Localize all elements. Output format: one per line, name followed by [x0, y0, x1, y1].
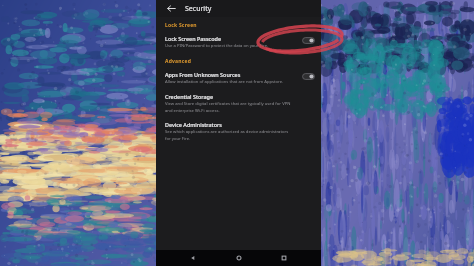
- staticText: Apps From Unknown Sources: [165, 71, 241, 78]
- button[interactable]: Credential Storage: [156, 89, 321, 117]
- staticText: Lock Screen: [165, 22, 197, 29]
- button[interactable]: Back: [165, 2, 178, 15]
- staticText: Security: [185, 4, 212, 14]
- staticText: See which applications are authorized as…: [165, 129, 293, 141]
- button[interactable]: Toggle: [302, 37, 315, 44]
- staticText: Use a PIN/Password to protect the data o…: [165, 43, 269, 49]
- button[interactable]: Apps From Unknown Sources: [156, 67, 321, 89]
- staticText: View and Store digital certificates that…: [165, 101, 293, 113]
- staticText: Lock Screen Passcode: [165, 35, 221, 42]
- staticText: Allow installation of applications that …: [165, 79, 284, 85]
- button[interactable]: Toggle: [302, 73, 315, 80]
- staticText: Credential Storage: [165, 93, 213, 100]
- button[interactable]: Device Administrators: [156, 117, 321, 145]
- button[interactable]: Home: [231, 250, 247, 266]
- staticText: Device Administrators: [165, 121, 222, 128]
- button[interactable]: Lock Screen Passcode: [156, 31, 321, 53]
- button[interactable]: Back: [185, 250, 201, 266]
- staticText: Advanced: [165, 58, 192, 65]
- button[interactable]: Recent apps: [276, 250, 292, 266]
